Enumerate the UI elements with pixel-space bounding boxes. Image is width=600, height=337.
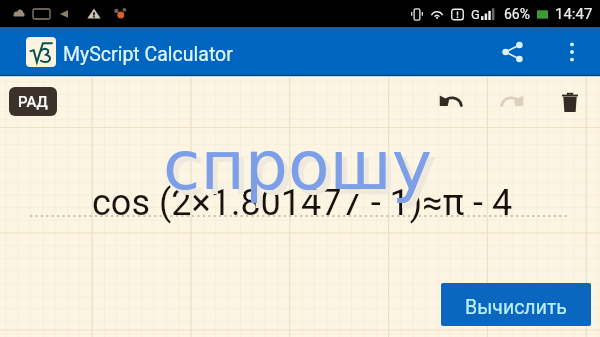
staticText: cos (2×1.801477 - 1)≈π - 4 [92, 182, 513, 224]
button[interactable]: Delete [553, 85, 587, 119]
staticText: спрошу [168, 131, 438, 210]
staticText: 66% [504, 6, 530, 22]
button[interactable]: Share [477, 28, 548, 76]
button[interactable]: РАД [9, 87, 57, 116]
button[interactable]: Вычислить [441, 283, 591, 326]
staticText: спрошу [163, 126, 433, 205]
button[interactable]: MyScript Calculator [26, 37, 233, 67]
button[interactable]: More options [548, 28, 596, 76]
staticText: G [471, 7, 480, 22]
button[interactable]: Redo [495, 83, 529, 117]
staticText: РАД [18, 93, 48, 111]
button[interactable]: Undo [434, 83, 468, 117]
staticText: 14:47 [555, 5, 593, 23]
staticText: MyScript Calculator [63, 43, 233, 66]
staticText: Вычислить [465, 296, 567, 319]
